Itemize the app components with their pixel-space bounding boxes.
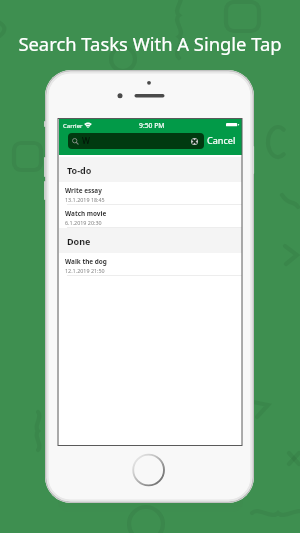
button[interactable]: Cancel	[207, 134, 236, 146]
staticText: Cancel	[207, 134, 236, 146]
staticText: Walk the dog	[65, 257, 107, 266]
button[interactable]: Clear search	[191, 138, 198, 145]
button[interactable]: Walk the dog	[59, 253, 242, 276]
button[interactable]: W	[68, 133, 204, 149]
staticText: To-do	[67, 164, 92, 176]
staticText: 13.1.2019 18:45	[65, 196, 105, 203]
staticText: Carrier	[63, 122, 83, 130]
staticText: 6.1.2019 20:30	[65, 219, 102, 226]
staticText: Search Tasks With A Single Tap	[0, 31, 300, 56]
staticText: W	[82, 135, 90, 147]
staticText: Done	[67, 235, 91, 247]
staticText: Write essay	[65, 186, 102, 195]
staticText: 12.1.2019 21:50	[65, 267, 105, 274]
button[interactable]: Watch movie	[59, 205, 242, 228]
staticText: Watch movie	[65, 209, 107, 218]
staticText: 9:50 PM	[139, 121, 165, 130]
button[interactable]: Write essay	[59, 182, 242, 205]
